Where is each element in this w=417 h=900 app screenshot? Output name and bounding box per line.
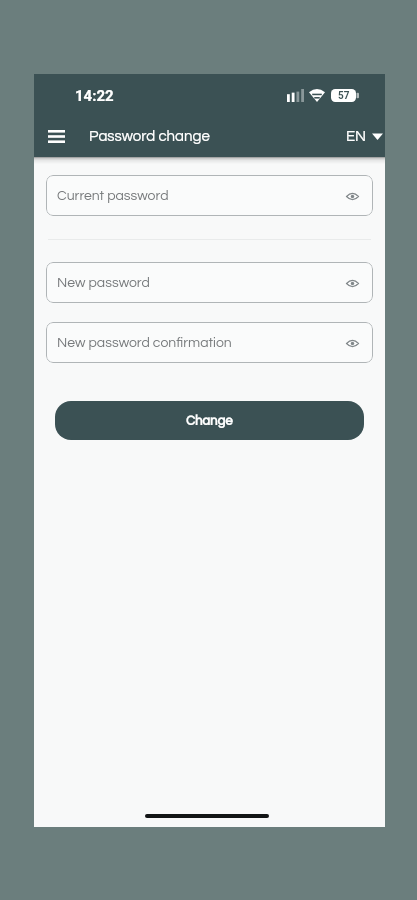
staticText: Current password: [57, 189, 169, 203]
button[interactable]: New password: [46, 262, 373, 303]
staticText: EN: [346, 129, 367, 144]
button[interactable]: New password confirmation: [46, 322, 373, 363]
staticText: 14:22: [75, 87, 114, 105]
button[interactable]: Current password: [46, 175, 373, 216]
button[interactable]: Show password: [339, 330, 365, 356]
button[interactable]: Open navigation menu: [36, 116, 76, 156]
staticText: New password confirmation: [57, 336, 232, 350]
button[interactable]: Show password: [339, 183, 365, 209]
button[interactable]: Show password: [339, 270, 365, 296]
button[interactable]: Change language: [342, 121, 387, 152]
staticText: New password: [57, 276, 150, 290]
button[interactable]: Change: [55, 401, 364, 440]
staticText: Change: [186, 414, 233, 427]
staticText: 57: [338, 90, 350, 102]
staticText: Password change: [89, 129, 210, 144]
